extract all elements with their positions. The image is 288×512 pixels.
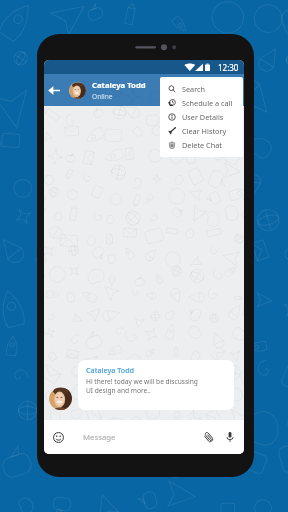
button[interactable]: Schedule a call	[160, 96, 243, 110]
button[interactable]: User Details	[160, 110, 243, 124]
button[interactable]: Emoji	[44, 420, 72, 454]
button[interactable]: Delete Chat	[160, 138, 243, 152]
button[interactable]: Attach	[198, 420, 218, 454]
staticText: 12:30	[218, 62, 239, 73]
button[interactable]: Cataleya Todd	[78, 360, 234, 410]
button[interactable]: Search	[160, 82, 243, 96]
staticText: Online	[92, 92, 113, 101]
button[interactable]: Back	[44, 74, 64, 106]
staticText: Cataleya Todd	[86, 365, 135, 375]
staticText: User Details	[182, 112, 224, 122]
staticText: Delete Chat	[182, 140, 222, 150]
staticText: Search	[182, 84, 206, 94]
button[interactable]: Voice message	[220, 420, 240, 454]
staticText: Schedule a call	[182, 98, 233, 108]
button[interactable]: Clear History	[160, 124, 243, 138]
staticText: Cataleya Todd	[92, 80, 146, 90]
staticText: Message	[83, 432, 116, 443]
staticText: Clear History	[182, 126, 227, 136]
staticText: Hi there! today we will be discussing UI…	[86, 377, 198, 395]
